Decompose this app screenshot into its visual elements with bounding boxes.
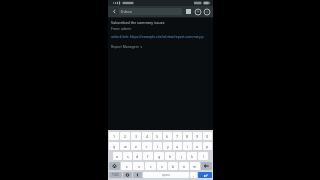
staticText: h [169,154,172,159]
button[interactable]: k [187,152,197,160]
button[interactable]: 2 [120,132,130,140]
button[interactable]: n [179,162,189,170]
button[interactable]: unlock link: https://example.site/a/view… [111,34,204,39]
staticText: u [176,144,179,149]
staticText: 9 [196,134,199,139]
staticText: c [150,164,152,169]
button[interactable]: v [157,162,167,170]
button[interactable]: l [198,152,208,160]
staticText: 4 [146,134,149,139]
button[interactable]: t [153,142,162,150]
staticText: f [147,154,149,159]
button[interactable]: x [133,162,144,170]
staticText: 0 [206,134,209,139]
button[interactable]: . [190,172,197,178]
button[interactable]: i [183,142,192,150]
button[interactable]: Backspace [201,162,212,170]
staticText: j [181,154,182,159]
staticText: ?123 [112,173,119,177]
button[interactable]: 8 [183,132,192,140]
button[interactable]: More options [202,7,211,16]
button[interactable]: s [123,152,132,160]
button[interactable]: d [133,152,142,160]
staticText: m [193,164,197,169]
button[interactable]: 0 [203,132,212,140]
staticText: Subscribed the summary issues [111,20,165,25]
staticText: Inbox [121,9,132,14]
button[interactable]: Return [198,172,212,178]
button[interactable]: w [120,142,130,150]
staticText: e [135,144,138,149]
button[interactable]: 6 [163,132,172,140]
staticText: 5 [156,134,159,139]
staticText: l [203,154,204,159]
staticText: space [162,173,171,177]
staticText: n [183,164,186,169]
button[interactable]: b [168,162,178,170]
button[interactable]: h [165,152,175,160]
button[interactable]: e [131,142,141,150]
staticText: From: admin [111,26,132,31]
button[interactable]: j [176,152,186,160]
button[interactable]: a [113,152,122,160]
button[interactable]: r [142,142,152,150]
staticText: o [196,144,199,149]
staticText: w [124,144,127,149]
button[interactable]: 1 [109,132,119,140]
staticText: v [161,164,163,169]
button[interactable]: u [173,142,182,150]
staticText: p [206,144,209,149]
button[interactable]: y [163,142,172,150]
staticText: 3 [135,134,138,139]
staticText: x [138,164,140,169]
staticText: d [136,154,139,159]
button[interactable]: 7 [173,132,182,140]
button[interactable]: ?123 [109,172,122,178]
staticText: y [167,144,169,149]
button[interactable]: z [121,162,132,170]
button[interactable]: g [154,152,164,160]
staticText: g [158,154,161,159]
button[interactable]: Shift [109,162,120,170]
button[interactable]: Voice input [133,172,142,178]
staticText: 1 [113,134,116,139]
button[interactable]: m [190,162,200,170]
button[interactable]: f [143,152,153,160]
button[interactable]: q [109,142,119,150]
staticText: 2 [124,134,127,139]
button[interactable]: Inbox [119,8,182,15]
button[interactable]: o [193,142,202,150]
button[interactable]: 3 [131,132,141,140]
button[interactable]: 4 [142,132,152,140]
staticText: s [127,154,129,159]
button[interactable]: Space [143,172,189,178]
staticText: r [146,144,148,149]
staticText: 6 [166,134,169,139]
staticText: z [126,164,128,169]
button[interactable]: Refresh [193,7,202,16]
staticText: . [193,173,194,178]
button[interactable]: c [145,162,156,170]
button[interactable]: Tabs [184,7,193,16]
staticText: Report Managers v [111,44,143,49]
staticText: a [116,154,119,159]
staticText: q [113,144,116,149]
staticText: i [187,144,188,149]
button[interactable]: 5 [153,132,162,140]
staticText: b [172,164,175,169]
button[interactable]: p [203,142,212,150]
staticText: 8 [186,134,189,139]
button[interactable]: 9 [193,132,202,140]
button[interactable]: Back [110,7,119,16]
staticText: 7 [176,134,179,139]
button[interactable]: Emoji [123,172,132,178]
staticText: t [157,144,159,149]
staticText: k [191,154,193,159]
